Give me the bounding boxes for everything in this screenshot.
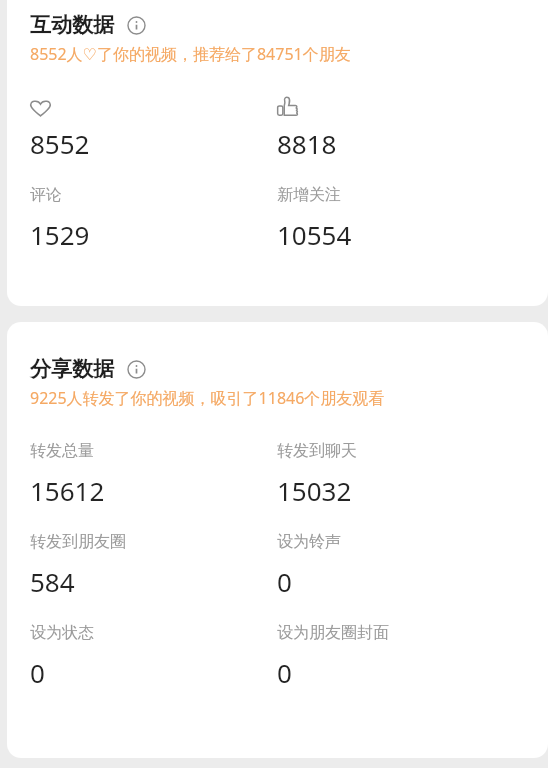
button[interactable]: 转发总量 <box>30 441 105 508</box>
staticText: 15612 <box>30 473 105 508</box>
staticText: 新增关注 <box>277 185 341 211</box>
button[interactable]: 8818 <box>277 94 337 161</box>
button[interactable]: 8552 <box>30 94 90 161</box>
button[interactable]: 转发到聊天 <box>277 441 357 508</box>
staticText: 0 <box>30 655 45 690</box>
staticText: 设为铃声 <box>277 532 341 558</box>
staticText: 设为朋友圈封面 <box>277 623 389 649</box>
button[interactable]: 设为朋友圈封面 <box>277 623 389 690</box>
staticText: 设为状态 <box>30 623 94 649</box>
button[interactable]: 转发到朋友圈 <box>30 532 126 599</box>
staticText: 转发到聊天 <box>277 441 357 467</box>
button[interactable]: 说明 <box>123 356 149 382</box>
staticText: 9225人转发了你的视频，吸引了11846个朋友观看 <box>30 387 385 409</box>
staticText: 584 <box>30 564 75 599</box>
staticText: 分享数据 <box>30 356 114 382</box>
staticText: 0 <box>277 564 292 599</box>
staticText: 转发到朋友圈 <box>30 532 126 558</box>
button[interactable]: 说明 <box>123 12 149 38</box>
staticText: 8818 <box>277 126 337 161</box>
staticText: 0 <box>277 655 292 690</box>
button[interactable]: 评论 <box>30 185 90 252</box>
staticText: 8552 <box>30 126 90 161</box>
staticText: 互动数据 <box>30 12 114 38</box>
staticText: 10554 <box>277 217 352 252</box>
button[interactable]: 设为状态 <box>30 623 94 690</box>
button[interactable]: 新增关注 <box>277 185 352 252</box>
button[interactable]: 设为铃声 <box>277 532 341 599</box>
staticText: 15032 <box>277 473 352 508</box>
staticText: 评论 <box>30 185 62 211</box>
staticText: 8552人♡了你的视频，推荐给了84751个朋友 <box>30 43 351 65</box>
staticText: 转发总量 <box>30 441 94 467</box>
staticText: 1529 <box>30 217 90 252</box>
